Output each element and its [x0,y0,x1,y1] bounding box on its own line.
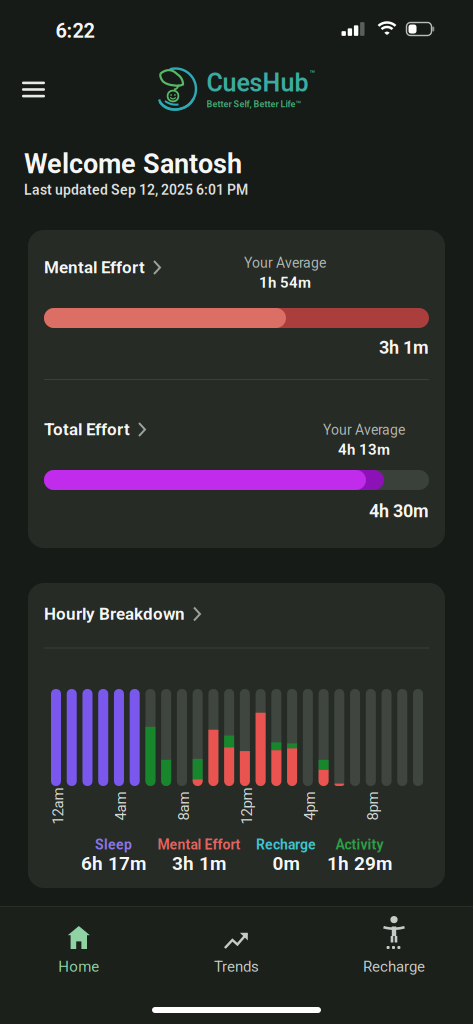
staticText: Trends [214,958,259,975]
button[interactable]: Hourly Breakdown [44,604,429,624]
staticText: Last updated Sep 12, 2025 6:01 PM [24,182,248,198]
staticText: 6h 17m [81,853,146,874]
staticText: 1h 29m [327,853,392,874]
button[interactable]: Total Effort [44,420,429,439]
button[interactable]: Trends [158,916,315,975]
staticText: 0m [272,853,299,874]
button[interactable]: Home [0,916,158,975]
staticText: Recharge [256,837,316,853]
staticText: 12pm [228,797,265,814]
staticText: Sleep [95,837,132,853]
staticText: 1h 54m [259,274,311,291]
staticText: 12am [39,797,76,814]
button[interactable]: Mental Effort [44,258,429,277]
staticText: 6:22 [55,20,94,42]
staticText: 8pm [358,797,387,814]
staticText: Welcome Santosh [24,149,242,179]
staticText: 4h 30m [369,501,429,521]
staticText: 8am [169,797,198,814]
staticText: CuesHub [206,69,308,97]
staticText: Your Average [323,422,405,438]
staticText: Your Average [244,255,326,271]
staticText: 4pm [295,797,324,814]
staticText: Home [58,958,99,975]
button[interactable]: Recharge [315,916,473,975]
staticText: 4am [106,797,135,814]
staticText: Mental Effort [157,837,240,853]
staticText: Recharge [363,958,425,975]
staticText: 3h 1m [379,337,429,358]
staticText: ™ [309,69,315,79]
staticText: Activity [335,837,383,853]
staticText: Mental Effort [44,258,145,277]
button[interactable]: Menu [14,74,53,105]
staticText: Total Effort [44,420,130,439]
staticText: 4h 13m [338,441,390,458]
staticText: Better Self, Better Life™ [206,99,301,109]
staticText: 3h 1m [172,853,226,874]
staticText: Hourly Breakdown [44,604,185,624]
